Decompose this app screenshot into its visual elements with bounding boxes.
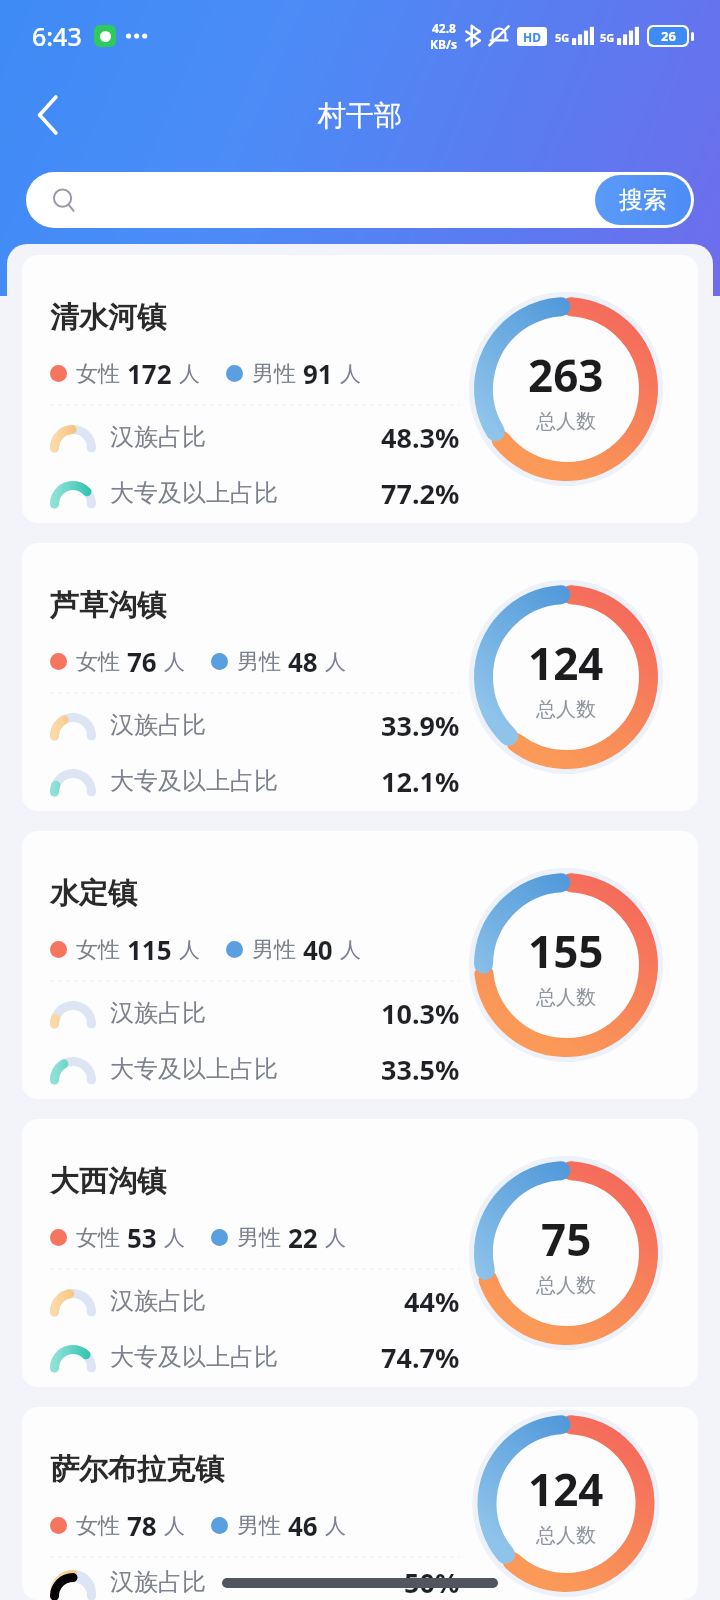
button[interactable]: 清水河镇: [22, 255, 698, 523]
staticText: 芦草沟镇: [50, 587, 166, 624]
staticText: 人: [179, 937, 200, 963]
staticText: 萨尔布拉克镇: [50, 1451, 224, 1488]
staticText: 48: [288, 644, 318, 679]
staticText: 155: [528, 921, 604, 981]
staticText: 女性: [76, 648, 120, 676]
staticText: 男性: [237, 1224, 281, 1252]
staticText: 5G: [600, 30, 615, 45]
staticText: 人: [164, 649, 185, 675]
staticText: 6:43: [32, 19, 82, 53]
staticText: 42.8: [432, 20, 456, 36]
staticText: 男性: [252, 360, 296, 388]
staticText: 10.3%: [381, 995, 460, 1032]
staticText: KB/s: [430, 36, 457, 52]
staticText: 124: [528, 1459, 604, 1519]
staticText: 76: [127, 644, 157, 679]
staticText: 40: [303, 932, 333, 967]
staticText: 大专及以上占比: [110, 766, 278, 796]
staticText: 人: [325, 649, 346, 675]
staticText: 115: [127, 932, 172, 967]
button[interactable]: 水定镇: [22, 831, 698, 1099]
staticText: 总人数: [536, 1273, 596, 1298]
staticText: 大西沟镇: [50, 1163, 166, 1200]
staticText: 女性: [76, 936, 120, 964]
staticText: 48.3%: [381, 419, 460, 456]
button[interactable]: 搜索: [26, 172, 694, 228]
button[interactable]: 大西沟镇: [22, 1119, 698, 1387]
staticText: 汉族占比: [110, 422, 206, 452]
staticText: 总人数: [536, 1523, 596, 1548]
staticText: 33.9%: [381, 707, 460, 744]
staticText: 水定镇: [50, 875, 137, 912]
staticText: 男性: [252, 936, 296, 964]
staticText: 5G: [555, 30, 570, 45]
staticText: 大专及以上占比: [110, 1054, 278, 1084]
staticText: 75: [541, 1209, 592, 1269]
staticText: 大专及以上占比: [110, 478, 278, 508]
staticText: 人: [164, 1225, 185, 1251]
staticText: 男性: [237, 1512, 281, 1540]
staticText: 女性: [76, 1224, 120, 1252]
staticText: 总人数: [536, 985, 596, 1010]
staticText: 77.2%: [381, 475, 460, 512]
staticText: 44%: [404, 1283, 460, 1320]
staticText: 汉族占比: [110, 1286, 206, 1316]
staticText: 26: [661, 27, 676, 45]
button[interactable]: 萨尔布拉克镇: [22, 1407, 698, 1600]
staticText: 172: [127, 356, 172, 391]
staticText: 女性: [76, 1512, 120, 1540]
staticText: 人: [179, 361, 200, 387]
staticText: 人: [340, 937, 361, 963]
staticText: 总人数: [536, 409, 596, 434]
staticText: 22: [288, 1220, 318, 1255]
staticText: 124: [528, 633, 604, 693]
staticText: 汉族占比: [110, 998, 206, 1028]
staticText: 男性: [237, 648, 281, 676]
staticText: 搜索: [619, 185, 667, 215]
staticText: HD: [523, 29, 541, 45]
staticText: 人: [325, 1225, 346, 1251]
staticText: 33.5%: [381, 1051, 460, 1088]
staticText: 50%: [404, 1564, 460, 1600]
staticText: 汉族占比: [110, 710, 206, 740]
staticText: 汉族占比: [110, 1567, 206, 1597]
staticText: 91: [303, 356, 333, 391]
staticText: 总人数: [536, 697, 596, 722]
staticText: 人: [340, 361, 361, 387]
staticText: 46: [288, 1508, 318, 1543]
button[interactable]: 搜索: [595, 175, 691, 225]
staticText: 人: [325, 1513, 346, 1539]
staticText: 74.7%: [381, 1339, 460, 1376]
staticText: 村干部: [318, 98, 402, 133]
staticText: 78: [127, 1508, 157, 1543]
staticText: 53: [127, 1220, 157, 1255]
button[interactable]: Back: [18, 85, 78, 145]
staticText: 12.1%: [381, 763, 460, 800]
button[interactable]: 芦草沟镇: [22, 543, 698, 811]
staticText: 清水河镇: [50, 299, 166, 336]
staticText: 大专及以上占比: [110, 1342, 278, 1372]
staticText: 人: [164, 1513, 185, 1539]
staticText: 女性: [76, 360, 120, 388]
staticText: 263: [528, 345, 604, 405]
